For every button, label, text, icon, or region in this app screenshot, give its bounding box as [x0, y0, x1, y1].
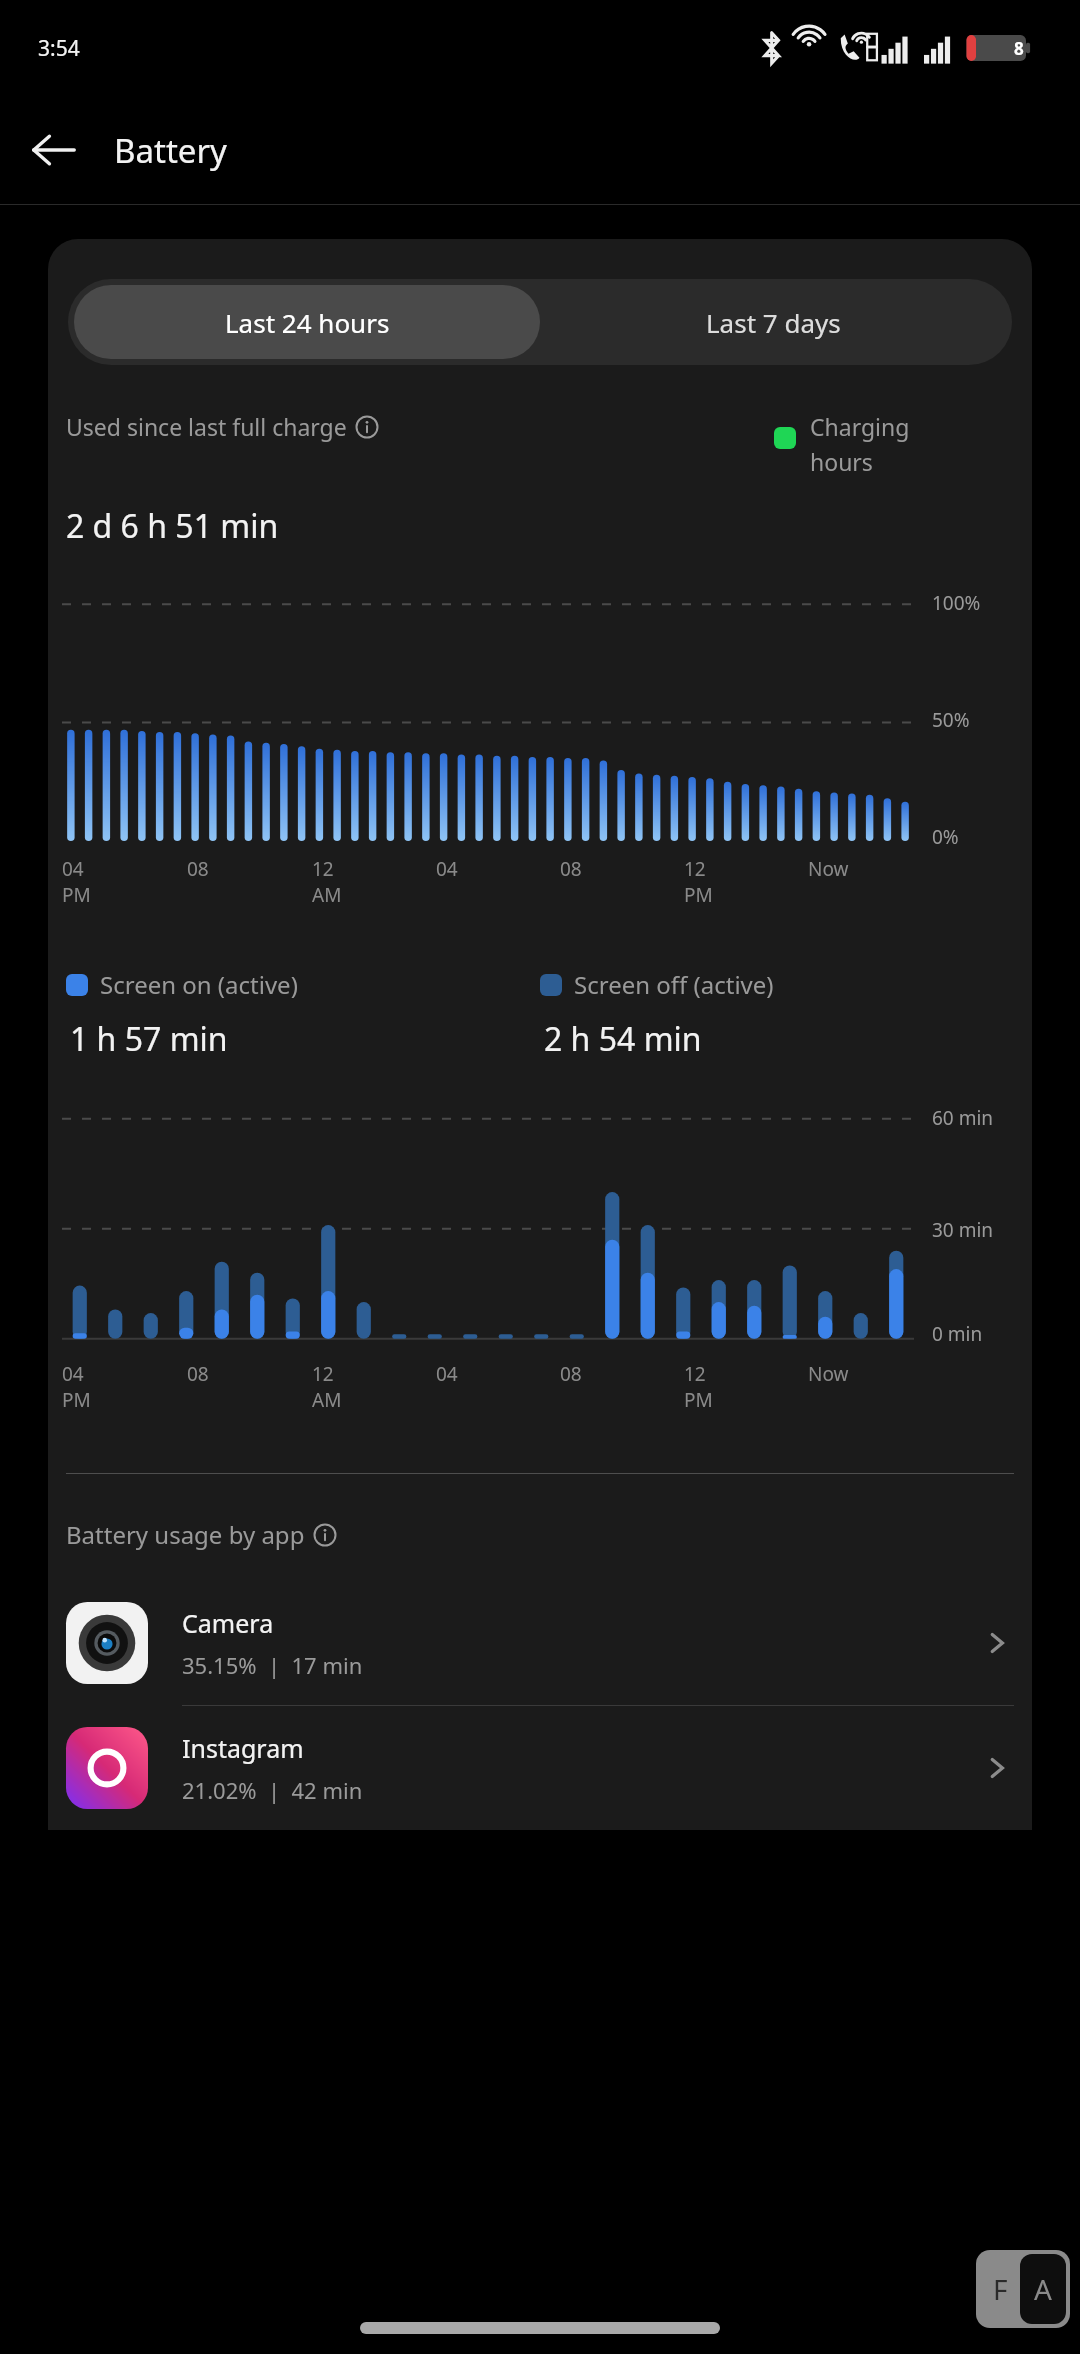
staticText: 8: [1014, 37, 1024, 60]
staticText: 0 min: [932, 1321, 983, 1347]
other: Open Instagram details: [980, 1751, 1014, 1785]
staticText: 04: [436, 856, 458, 882]
staticText: 50%: [932, 707, 970, 733]
staticText: 08: [560, 856, 582, 882]
staticText: 04: [62, 1361, 84, 1387]
other: More info: [355, 415, 379, 439]
staticText: 100%: [932, 590, 981, 616]
staticText: 30 min: [932, 1217, 994, 1243]
staticText: 2 d 6 h 51 min: [66, 504, 279, 548]
button[interactable]: Floating assistant: [980, 2254, 1066, 2324]
staticText: A: [1034, 2270, 1052, 2308]
staticText: Used since last full charge: [66, 411, 347, 442]
staticText: PM: [62, 882, 91, 908]
staticText: 04: [62, 856, 84, 882]
staticText: Now: [808, 1361, 849, 1387]
staticText: Charging hours: [810, 411, 910, 478]
staticText: F: [993, 2270, 1008, 2308]
staticText: Last 24 hours: [225, 305, 390, 340]
button[interactable]: Instagram: [48, 1706, 1032, 1830]
button[interactable]: Last 7 days: [540, 285, 1006, 359]
staticText: 12: [312, 856, 334, 882]
staticText: 08: [187, 1361, 209, 1387]
staticText: 2 h 54 min: [544, 1017, 702, 1061]
other: More info: [313, 1523, 337, 1547]
staticText: PM: [62, 1387, 91, 1413]
staticText: Screen off (active): [574, 968, 774, 1001]
staticText: 08: [560, 1361, 582, 1387]
staticText: 08: [187, 856, 209, 882]
button[interactable]: Camera: [48, 1581, 1032, 1705]
button[interactable]: Back: [0, 96, 108, 204]
other: Open Camera details: [980, 1626, 1014, 1660]
staticText: 21.02% | 42 min: [182, 1775, 363, 1805]
staticText: 0%: [932, 824, 959, 850]
staticText: PM: [684, 882, 713, 908]
staticText: 1 h 57 min: [70, 1017, 228, 1061]
staticText: Battery usage by app: [66, 1518, 305, 1551]
staticText: Now: [808, 856, 849, 882]
button[interactable]: Used since last full charge: [66, 411, 754, 442]
staticText: AM: [312, 882, 342, 908]
staticText: 35.15% | 17 min: [182, 1650, 363, 1680]
staticText: Last 7 days: [706, 305, 841, 340]
staticText: 04: [436, 1361, 458, 1387]
staticText: 12: [684, 856, 706, 882]
staticText: Camera: [182, 1606, 274, 1640]
staticText: Battery: [114, 128, 227, 173]
staticText: PM: [684, 1387, 713, 1413]
staticText: 3:54: [38, 34, 80, 63]
staticText: Instagram: [182, 1731, 304, 1765]
staticText: 60 min: [932, 1105, 994, 1131]
staticText: AM: [312, 1387, 342, 1413]
button[interactable]: Last 24 hours: [74, 285, 540, 359]
staticText: Screen on (active): [100, 968, 298, 1001]
staticText: 12: [312, 1361, 334, 1387]
button[interactable]: Battery usage by app: [66, 1518, 337, 1551]
staticText: 12: [684, 1361, 706, 1387]
